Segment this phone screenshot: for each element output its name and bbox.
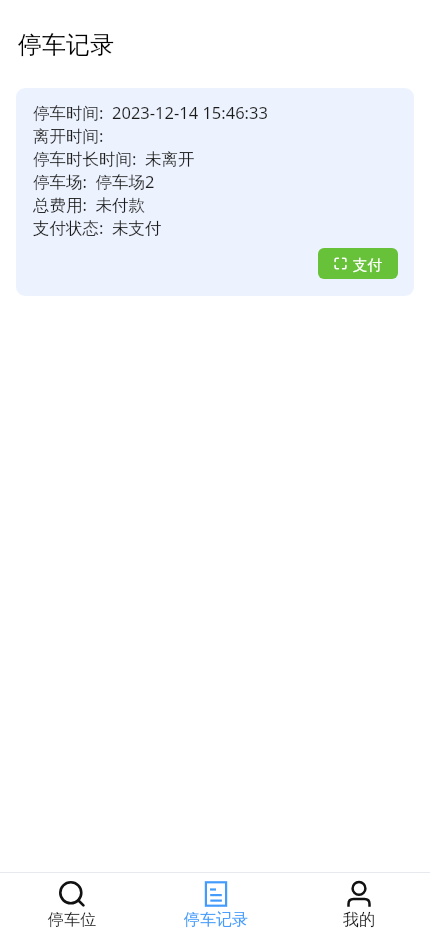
staticText: 停车场: 停车场2 — [33, 170, 155, 193]
staticText: 离开时间: — [33, 124, 104, 147]
staticText: 停车时间: 2023-12-14 15:46:33 — [33, 101, 268, 124]
staticText: 停车记录 — [184, 910, 248, 930]
button[interactable]: 停车时间: 2023-12-14 15:46:33 — [16, 88, 414, 296]
button[interactable]: Parking spots — [0, 873, 144, 932]
staticText: 支付状态: 未支付 — [33, 216, 162, 239]
button[interactable]: Profile — [287, 873, 430, 932]
staticText: 总费用: 未付款 — [33, 193, 146, 216]
button[interactable]: Parking records — [144, 873, 287, 932]
button[interactable]: 支付 — [318, 248, 398, 279]
staticText: 停车记录 — [18, 30, 114, 60]
staticText: 停车位 — [48, 910, 96, 930]
staticText: 我的 — [343, 910, 375, 930]
staticText: 支付 — [353, 256, 382, 274]
staticText: 停车时长时间: 未离开 — [33, 147, 195, 170]
